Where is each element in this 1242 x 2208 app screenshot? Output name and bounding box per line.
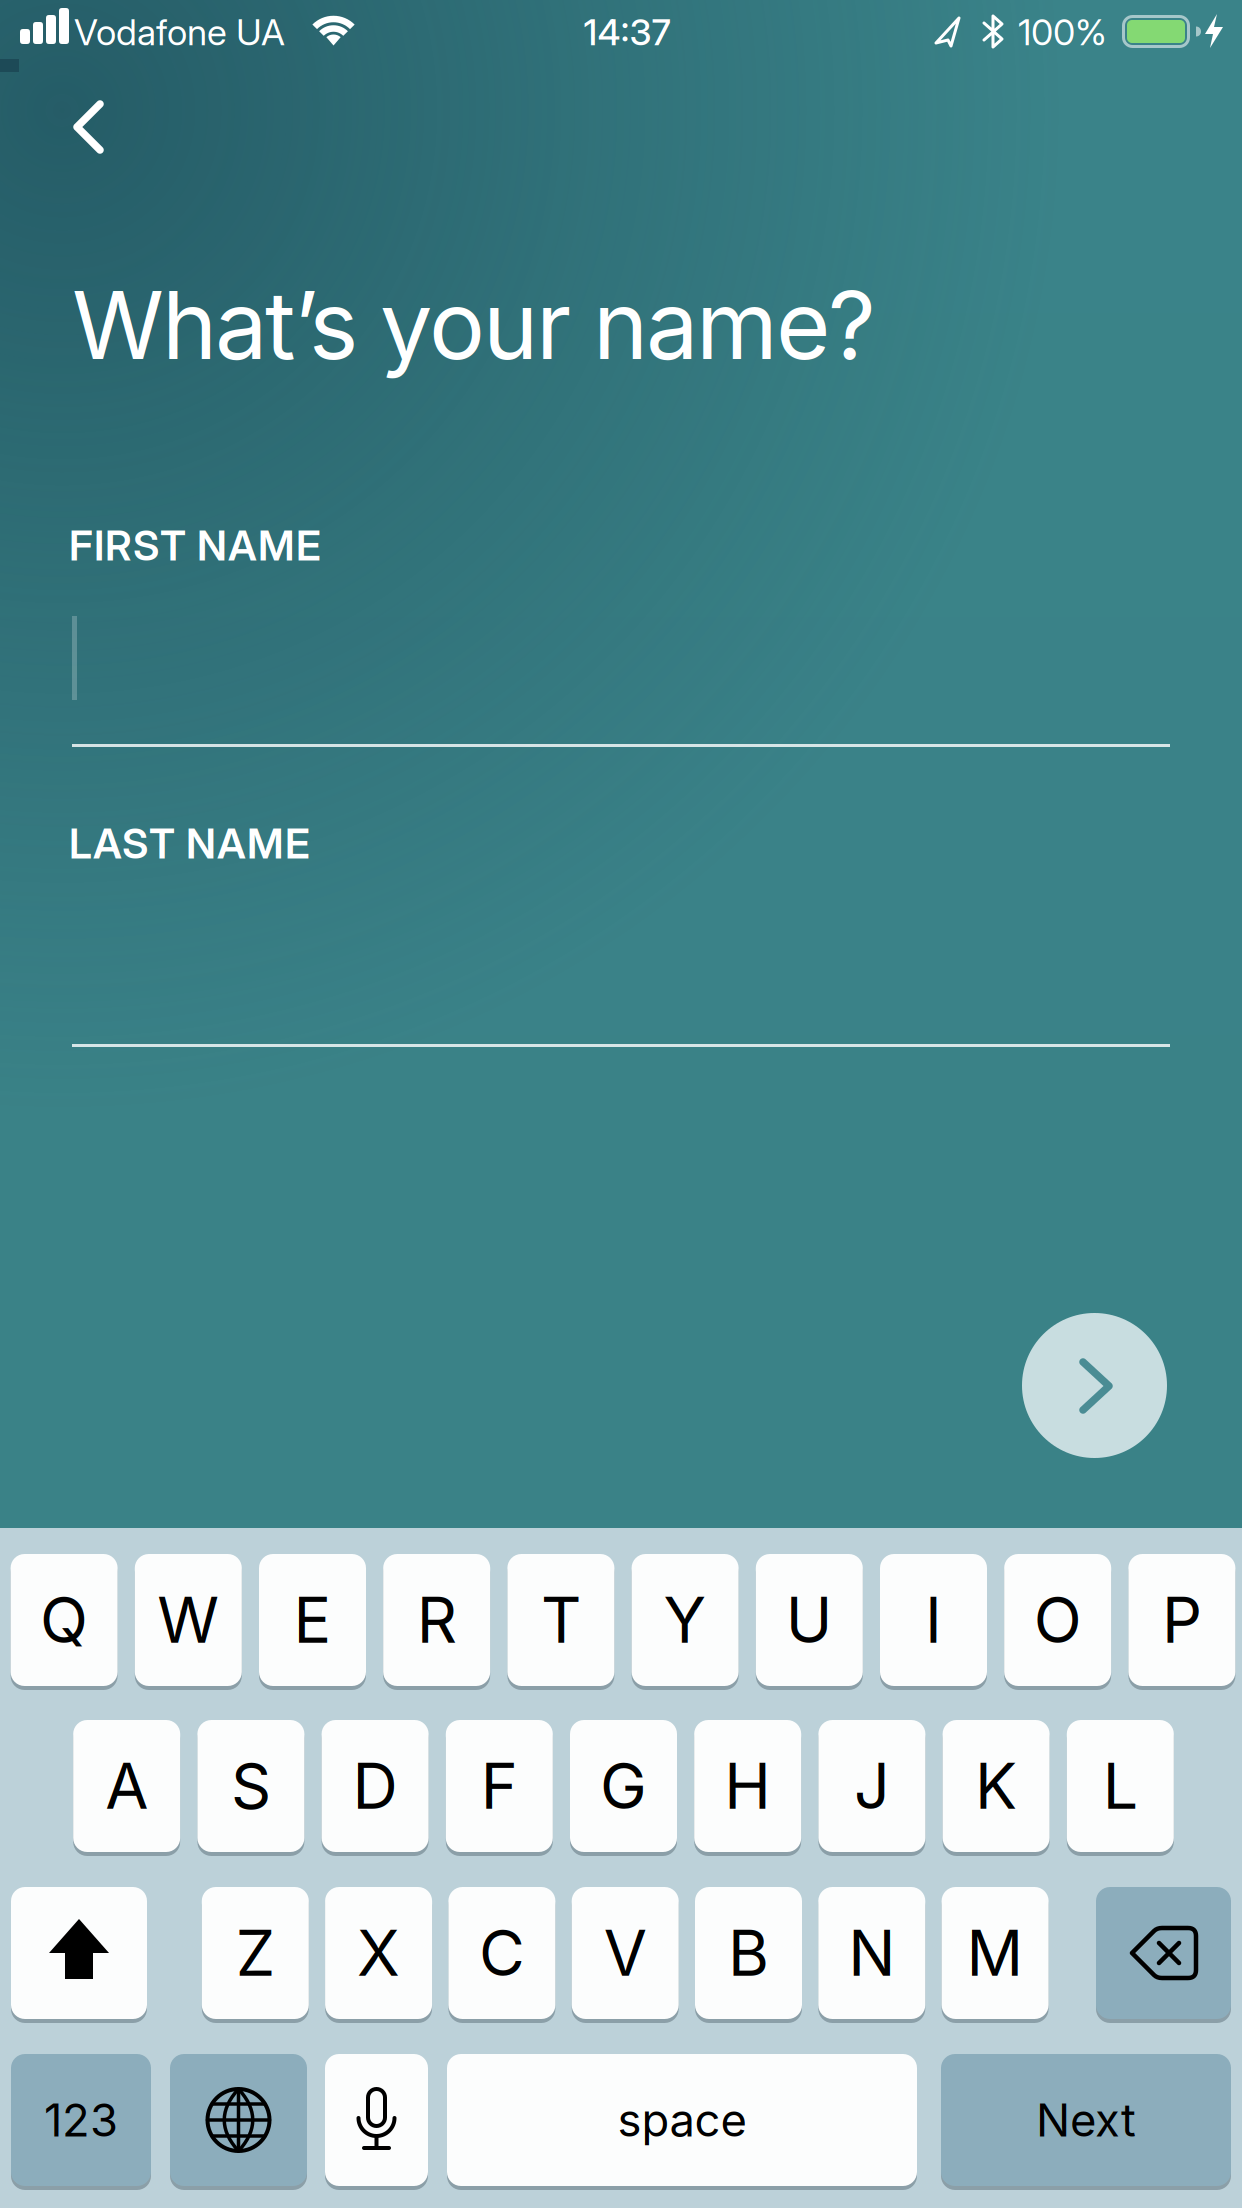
button[interactable]: Shift	[11, 1887, 147, 2023]
staticText: L	[1103, 1749, 1138, 1823]
button[interactable]: O	[1004, 1554, 1111, 1690]
staticText: D	[353, 1749, 398, 1823]
staticText: V	[604, 1916, 647, 1990]
staticText: W	[157, 1583, 219, 1657]
staticText: B	[728, 1916, 769, 1990]
button[interactable]: Z	[202, 1887, 309, 2023]
button[interactable]: S	[197, 1720, 304, 1856]
button[interactable]: N	[818, 1887, 925, 2023]
staticText: Next	[1036, 2093, 1136, 2147]
button[interactable]: Delete	[1096, 1887, 1231, 2023]
staticText: X	[357, 1916, 400, 1990]
staticText: H	[724, 1749, 771, 1823]
button[interactable]: A	[73, 1720, 180, 1856]
staticText: G	[600, 1749, 647, 1823]
button[interactable]: K	[943, 1720, 1050, 1856]
button[interactable]: H	[694, 1720, 801, 1856]
button[interactable]: Back	[44, 90, 164, 164]
button[interactable]: I	[880, 1554, 987, 1690]
button[interactable]: W	[135, 1554, 242, 1690]
staticText: LAST NAME	[69, 819, 310, 868]
button[interactable]: D	[322, 1720, 429, 1856]
staticText: O	[1034, 1583, 1082, 1657]
button[interactable]: E	[259, 1554, 366, 1690]
staticText: 100%	[1018, 11, 1107, 53]
staticText: S	[231, 1749, 271, 1823]
button[interactable]: B	[695, 1887, 802, 2023]
staticText: T	[541, 1583, 581, 1657]
button[interactable]: Y	[632, 1554, 739, 1690]
button[interactable]: Next keyboard	[170, 2054, 307, 2190]
staticText: I	[925, 1583, 942, 1657]
button[interactable]: L	[1067, 1720, 1174, 1856]
button[interactable]: T	[507, 1554, 614, 1690]
button[interactable]: C	[448, 1887, 555, 2023]
button[interactable]: X	[325, 1887, 432, 2023]
button[interactable]: G	[570, 1720, 677, 1856]
staticText: J	[854, 1749, 890, 1823]
staticText: K	[975, 1749, 1017, 1823]
button[interactable]: R	[383, 1554, 490, 1690]
button[interactable]: U	[756, 1554, 863, 1690]
staticText: P	[1162, 1583, 1202, 1657]
button[interactable]: space	[447, 2054, 917, 2190]
staticText: Y	[664, 1583, 707, 1657]
staticText: Z	[236, 1916, 275, 1990]
button[interactable]: P	[1128, 1554, 1235, 1690]
button[interactable]: J	[818, 1720, 925, 1856]
button[interactable]: 123	[11, 2054, 151, 2190]
button[interactable]: M	[942, 1887, 1049, 2023]
staticText: U	[786, 1583, 833, 1657]
staticText: Vodafone UA	[74, 11, 285, 53]
button[interactable]: Next	[1022, 1313, 1167, 1458]
staticText: E	[293, 1583, 331, 1657]
button[interactable]: Dictate	[325, 2054, 428, 2190]
button[interactable]: Last name	[72, 816, 1170, 1047]
staticText: R	[417, 1583, 457, 1657]
staticText: Q	[40, 1583, 88, 1657]
staticText: N	[848, 1916, 895, 1990]
button[interactable]: Q	[11, 1554, 118, 1690]
staticText: F	[481, 1749, 518, 1823]
staticText: A	[105, 1749, 148, 1823]
staticText: 123	[44, 2093, 118, 2147]
staticText: space	[617, 2093, 746, 2147]
staticText: FIRST NAME	[69, 521, 321, 570]
button[interactable]: V	[572, 1887, 679, 2023]
button[interactable]: Next	[941, 2054, 1231, 2190]
button[interactable]: F	[446, 1720, 553, 1856]
staticText: 14:37	[583, 11, 670, 53]
button[interactable]: First name	[72, 518, 1170, 747]
staticText: What’s your name?	[72, 270, 876, 380]
staticText: C	[479, 1916, 525, 1990]
staticText: M	[967, 1916, 1024, 1990]
